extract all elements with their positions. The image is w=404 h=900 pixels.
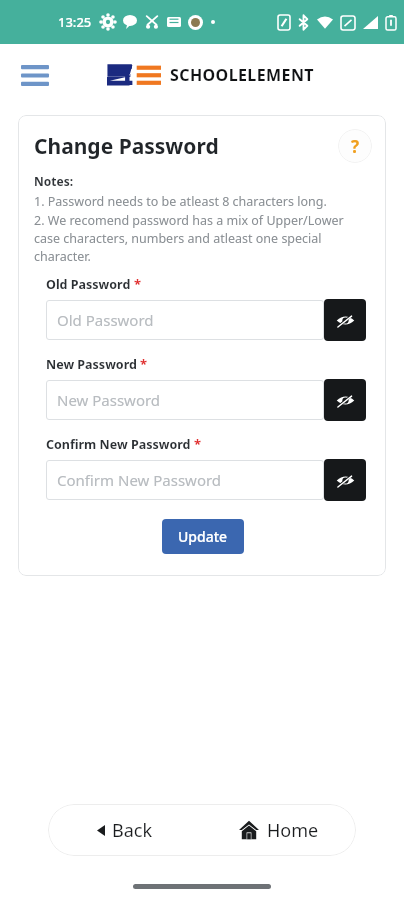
- staticText: *: [140, 355, 148, 373]
- button[interactable]: Back: [48, 804, 202, 856]
- button[interactable]: Confirm New Password: [46, 460, 324, 500]
- staticText: 2. We recomend password has a mix of Upp…: [34, 212, 372, 265]
- button[interactable]: Open navigation menu: [12, 52, 58, 98]
- button[interactable]: Home: [202, 804, 356, 856]
- button[interactable]: Toggle password visibility: [324, 459, 366, 501]
- button[interactable]: New Password: [46, 380, 324, 420]
- button[interactable]: Update: [162, 519, 244, 554]
- button[interactable]: SCHOOLELEMENT: [107, 62, 314, 88]
- staticText: SCHOOLELEMENT: [170, 64, 314, 86]
- button[interactable]: Help: [338, 129, 372, 163]
- button[interactable]: Toggle password visibility: [324, 379, 366, 421]
- staticText: 13:25: [58, 13, 92, 31]
- staticText: ?: [351, 135, 360, 158]
- staticText: Home: [267, 818, 319, 843]
- staticText: *: [194, 435, 202, 453]
- staticText: Notes:: [34, 173, 74, 189]
- staticText: Change Password: [34, 132, 219, 161]
- staticText: Confirm New Password: [57, 470, 222, 490]
- staticText: Back: [112, 818, 153, 843]
- staticText: Update: [178, 527, 228, 546]
- staticText: New Password: [57, 390, 161, 410]
- staticText: 1. Password needs to be atleast 8 charac…: [34, 193, 327, 210]
- staticText: Old Password: [57, 310, 154, 330]
- staticText: Confirm New Password: [46, 436, 191, 453]
- staticText: Old Password: [46, 276, 131, 293]
- button[interactable]: Old Password: [46, 300, 324, 340]
- staticText: *: [134, 275, 142, 293]
- staticText: New Password: [46, 356, 137, 373]
- button[interactable]: Toggle password visibility: [324, 299, 366, 341]
